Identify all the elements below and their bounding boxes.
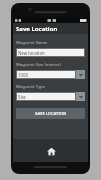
staticText: New location (18, 50, 45, 56)
staticText: Site (18, 94, 26, 100)
button[interactable]: 1000 (16, 70, 85, 79)
button[interactable]: SAVE LOCATION (16, 108, 85, 119)
staticText: Waypoint Size (metres) (16, 62, 61, 68)
staticText: 1000 (18, 72, 29, 78)
staticText: SAVE LOCATION (35, 111, 67, 116)
button[interactable]: Home (44, 144, 58, 158)
staticText: Waypoint Name (16, 40, 48, 46)
staticText: Save Location (16, 25, 58, 33)
button[interactable]: Site (16, 92, 85, 101)
button[interactable]: New location (16, 48, 85, 57)
staticText: Waypoint Type (16, 84, 45, 90)
